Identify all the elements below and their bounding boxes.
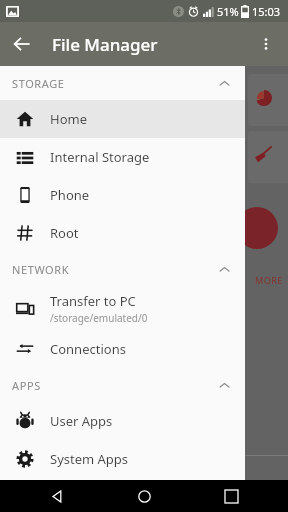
staticText: APPS: [12, 378, 41, 393]
button[interactable]: Collapse NETWORK: [213, 258, 235, 280]
staticText: 15:03: [252, 4, 281, 19]
staticText: Transfer to PC: [50, 292, 136, 310]
button[interactable]: Internal Storage: [0, 138, 245, 176]
staticText: Phone: [50, 186, 90, 204]
button[interactable]: Home: [114, 480, 174, 512]
button[interactable]: More options: [244, 22, 288, 66]
staticText: File Manager: [52, 33, 158, 56]
button[interactable]: Phone: [0, 176, 245, 214]
staticText: Connections: [50, 340, 126, 358]
staticText: NETWORK: [12, 262, 70, 277]
staticText: 51%: [217, 4, 239, 19]
button[interactable]: Collapse APPS: [213, 374, 235, 396]
staticText: System Apps: [50, 450, 129, 468]
button[interactable]: Collapse STORAGE: [213, 72, 235, 94]
staticText: MORE: [255, 274, 283, 286]
staticText: Home: [50, 110, 87, 128]
staticText: Root: [50, 224, 79, 242]
staticText: STORAGE: [12, 76, 65, 91]
button[interactable]: Connections: [0, 330, 245, 368]
button[interactable]: Transfer to PC: [0, 286, 245, 330]
button[interactable]: Recent apps: [201, 480, 261, 512]
staticText: Internal Storage: [50, 148, 150, 166]
button[interactable]: System Apps: [0, 440, 245, 478]
button[interactable]: Root: [0, 214, 245, 252]
staticText: User Apps: [50, 412, 113, 430]
button[interactable]: Back: [0, 22, 44, 66]
button[interactable]: Back: [27, 480, 87, 512]
button[interactable]: User Apps: [0, 402, 245, 440]
button[interactable]: Home: [0, 100, 245, 138]
staticText: /storage/emulated/0: [50, 311, 148, 325]
